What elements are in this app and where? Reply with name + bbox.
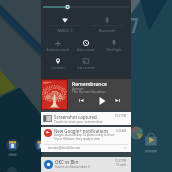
staticText: Game on November 3 [55, 164, 90, 169]
staticText: Ayreon [72, 86, 84, 91]
staticText: Trip to Hillsboro: Story ready to view [54, 137, 116, 141]
staticText: The Human Equation [72, 89, 106, 94]
button[interactable]: Cast screen [72, 58, 100, 72]
staticText: 4:30 AM [116, 129, 126, 133]
staticText: 10 cards [116, 163, 127, 167]
staticText: Google+ Auto-Backup: 35 photos ready to … [54, 133, 116, 137]
staticText: Flashlight [100, 47, 128, 51]
staticText: 10:27 PM [115, 159, 127, 163]
button[interactable]: Play [97, 96, 107, 106]
button[interactable]: NMBL5.5 [44, 17, 86, 35]
staticText: 10:27 PM [115, 114, 127, 118]
staticText: Bluetooth [86, 28, 128, 33]
button[interactable]: NMBL5.5 [41, 0, 131, 79]
staticText: kmslam@droid-life.com [48, 146, 81, 150]
staticText: Location [44, 65, 72, 69]
button[interactable]: Remembrance [41, 79, 131, 110]
button[interactable]: Previous [79, 98, 84, 103]
button[interactable]: Screenshot captured. [41, 112, 131, 125]
button[interactable]: Flashlight [100, 40, 128, 54]
button[interactable]: Next [115, 98, 120, 103]
button[interactable]: Bluetooth [86, 17, 128, 35]
staticText: Auto-rotate [72, 47, 100, 51]
button[interactable]: New Google+ notifications [41, 127, 131, 152]
staticText: Screenshot captured. [54, 114, 98, 120]
staticText: Remembrance [72, 81, 107, 88]
staticText: New Google+ notifications [54, 128, 109, 134]
staticText: Touch to view your screenshot. [54, 119, 104, 124]
staticText: Cast screen [72, 65, 100, 69]
staticText: OKC vs Bkn [55, 159, 79, 165]
staticText: NMBL5.5 [44, 28, 86, 33]
button[interactable]: Location [44, 58, 72, 72]
button[interactable]: Airplane mode [44, 40, 72, 54]
staticText: Airplane mode [44, 47, 72, 51]
button[interactable]: OKC vs Bkn [41, 157, 131, 172]
button[interactable]: Auto-rotate [72, 40, 100, 54]
